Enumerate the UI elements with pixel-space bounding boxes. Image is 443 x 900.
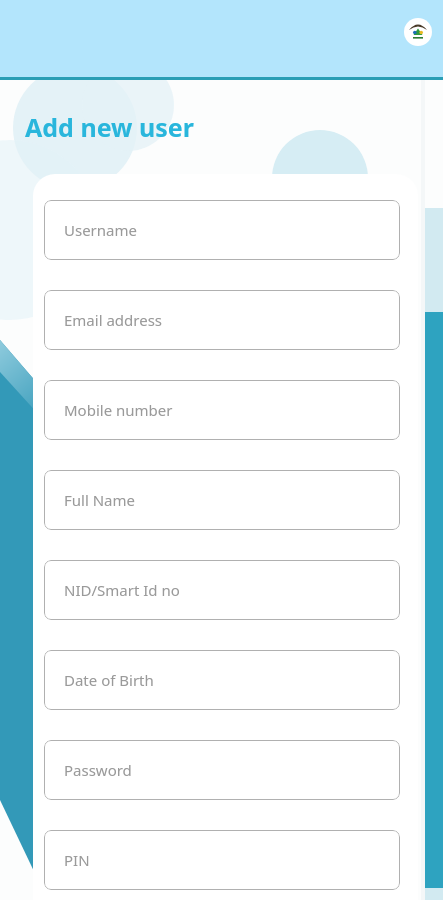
staticText: Add new user xyxy=(25,110,194,144)
staticText: Email address xyxy=(64,310,163,330)
button[interactable]: PIN xyxy=(44,830,400,890)
staticText: PIN xyxy=(64,850,90,870)
staticText: NID/Smart Id no xyxy=(64,580,180,600)
button[interactable]: Username xyxy=(44,200,400,260)
staticText: Date of Birth xyxy=(64,670,154,690)
staticText: Username xyxy=(64,220,137,240)
button[interactable]: App logo xyxy=(404,18,432,46)
button[interactable]: Email address xyxy=(44,290,400,350)
button[interactable]: NID/Smart Id no xyxy=(44,560,400,620)
staticText: Password xyxy=(64,760,132,780)
staticText: Mobile number xyxy=(64,400,173,420)
button[interactable]: Password xyxy=(44,740,400,800)
staticText: Full Name xyxy=(64,490,135,510)
button[interactable]: Mobile number xyxy=(44,380,400,440)
button[interactable]: Date of Birth xyxy=(44,650,400,710)
button[interactable]: Full Name xyxy=(44,470,400,530)
